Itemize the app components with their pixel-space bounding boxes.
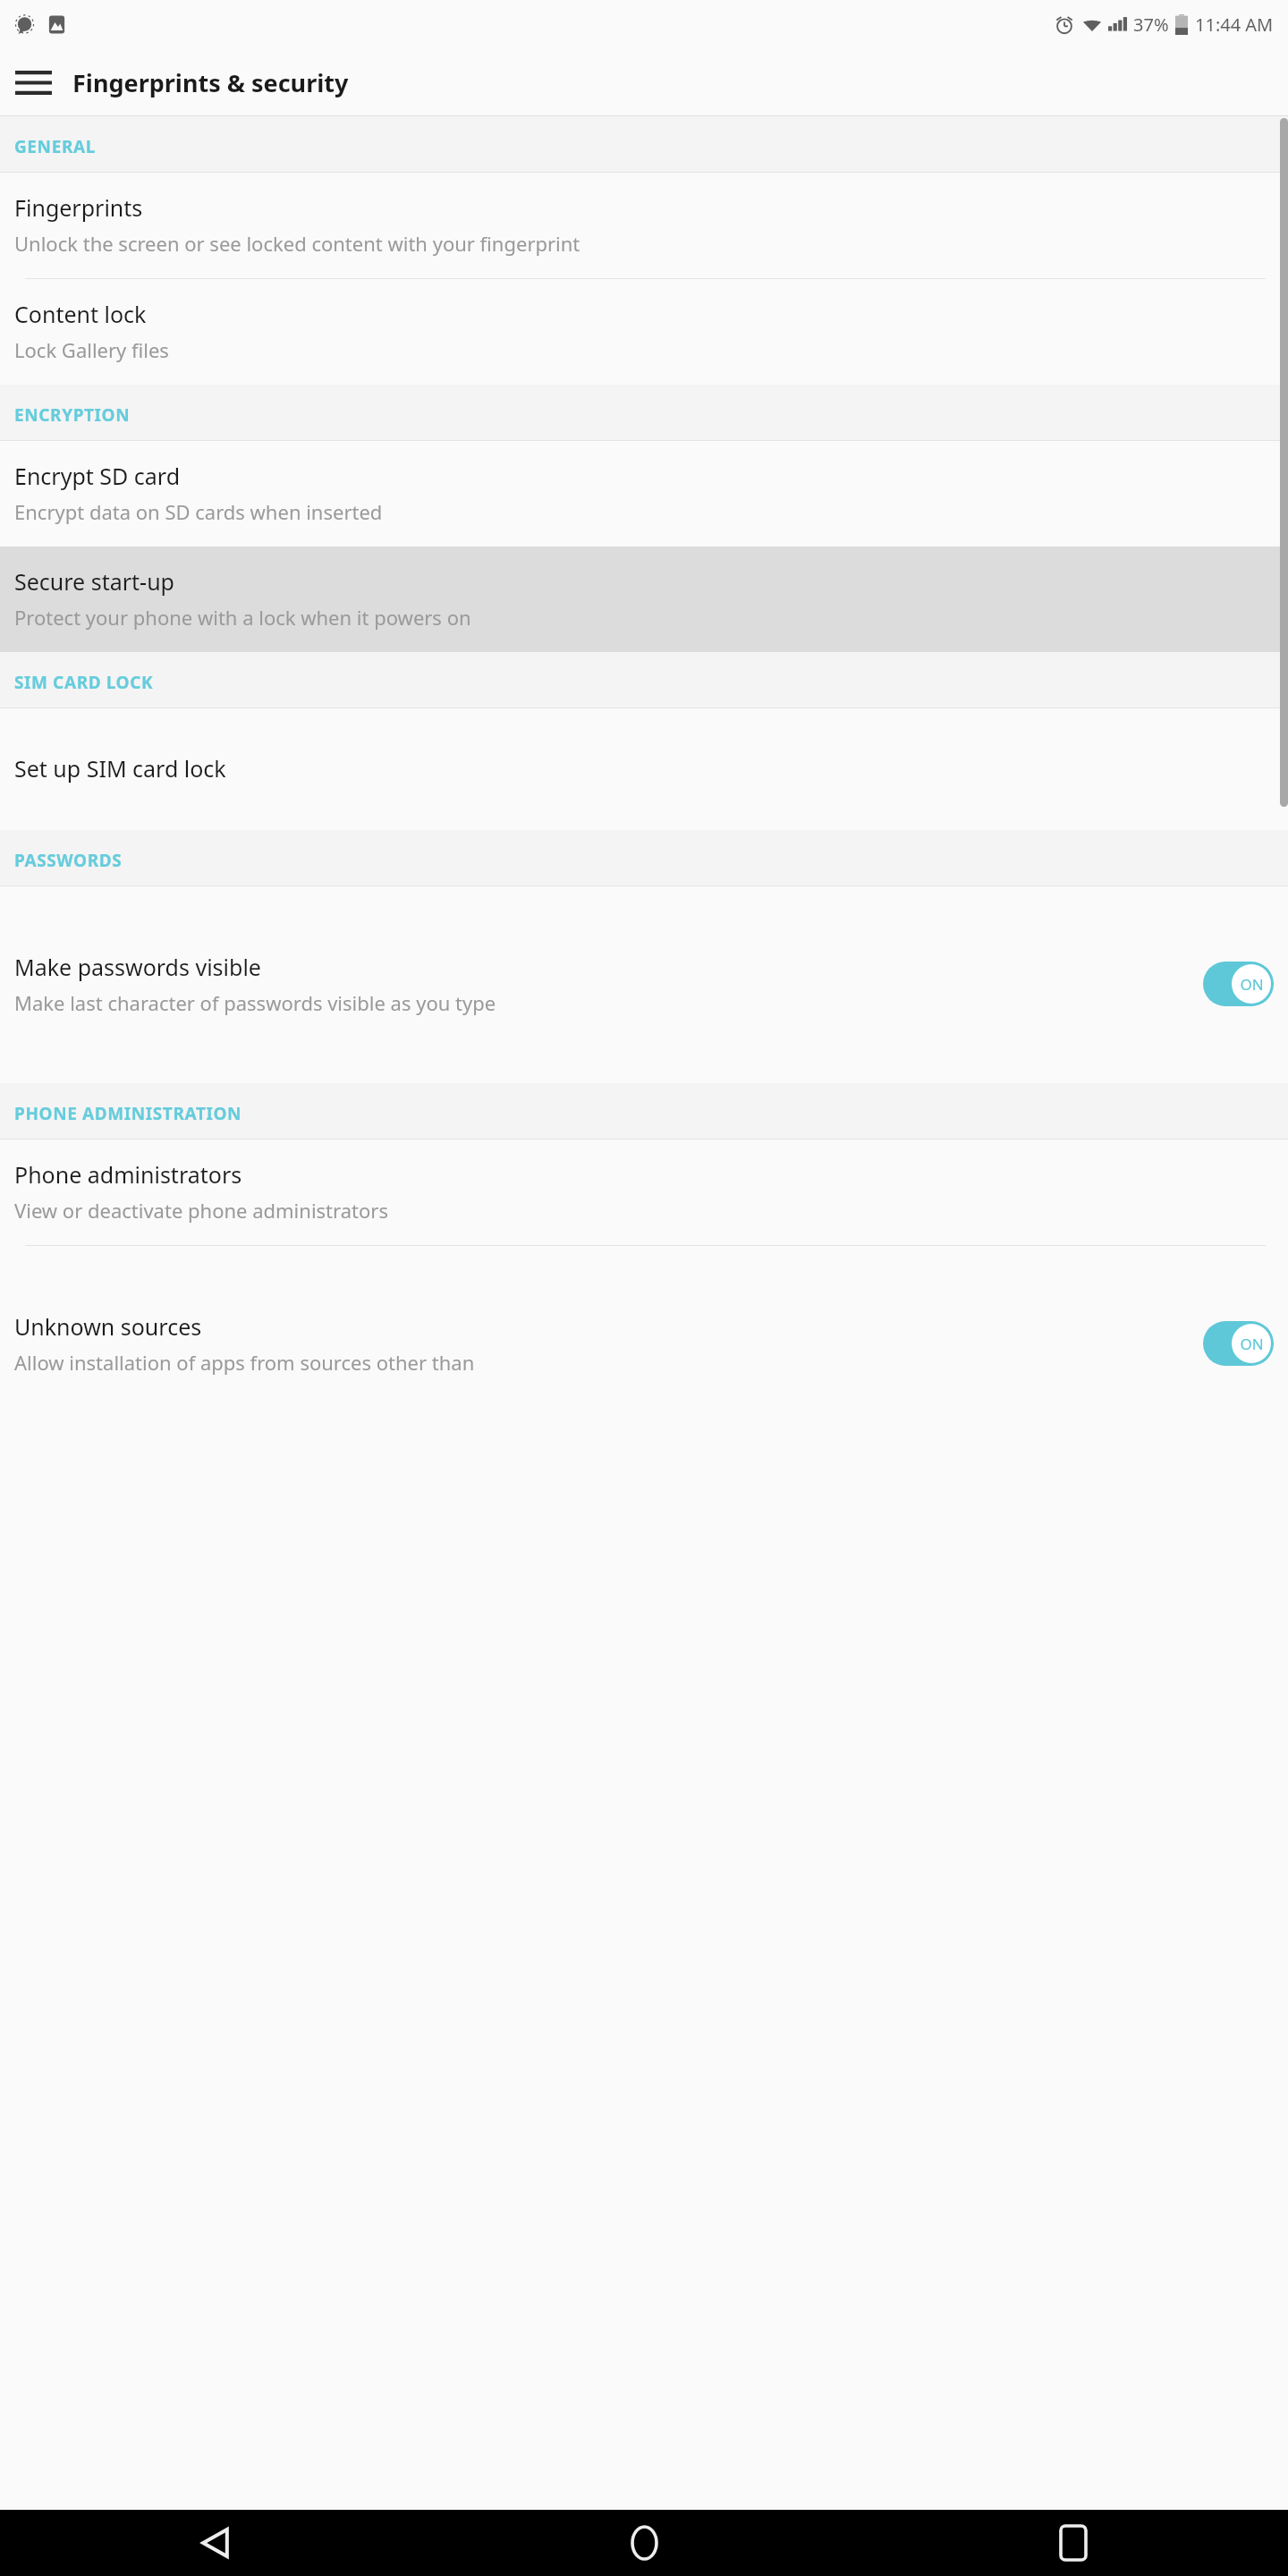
- staticText: Set up SIM card lock: [14, 753, 226, 784]
- staticText: SIM CARD LOCK: [14, 671, 154, 694]
- button[interactable]: Toggle on: [1203, 1321, 1274, 1366]
- staticText: Secure start-up: [14, 566, 174, 597]
- staticText: Fingerprints & security: [72, 66, 349, 99]
- staticText: Allow installation of apps from sources …: [14, 1349, 1110, 1376]
- button[interactable]: Secure start-up: [0, 547, 1288, 652]
- button[interactable]: Toggle on: [1203, 962, 1274, 1006]
- staticText: Encrypt SD card: [14, 461, 181, 491]
- staticText: View or deactivate phone administrators: [14, 1197, 1185, 1224]
- staticText: ON: [1240, 974, 1264, 995]
- staticText: PASSWORDS: [14, 849, 123, 872]
- staticText: GENERAL: [14, 135, 96, 158]
- button[interactable]: Fingerprints: [0, 173, 1288, 279]
- staticText: Lock Gallery files: [14, 336, 1185, 363]
- staticText: Phone administrators: [14, 1159, 242, 1190]
- staticText: Encrypt data on SD cards when inserted: [14, 498, 1185, 525]
- button[interactable]: Menu: [0, 49, 66, 115]
- staticText: Make last character of passwords visible…: [14, 989, 1110, 1016]
- staticText: ON: [1240, 1334, 1264, 1354]
- button[interactable]: Unknown sources: [0, 1246, 1288, 1443]
- button[interactable]: Phone administrators: [0, 1140, 1288, 1246]
- button[interactable]: Content lock: [0, 279, 1288, 385]
- staticText: Fingerprints: [14, 192, 143, 223]
- button[interactable]: Encrypt SD card: [0, 441, 1288, 547]
- button[interactable]: Home: [429, 2510, 859, 2576]
- staticText: Unlock the screen or see locked content …: [14, 230, 1185, 257]
- staticText: 11:44 AM: [1195, 13, 1274, 37]
- staticText: Content lock: [14, 299, 147, 329]
- staticText: Unknown sources: [14, 1311, 202, 1342]
- staticText: PHONE ADMINISTRATION: [14, 1102, 242, 1125]
- staticText: Make passwords visible: [14, 952, 261, 982]
- staticText: ENCRYPTION: [14, 403, 131, 427]
- button[interactable]: Set up SIM card lock: [0, 708, 1288, 830]
- button[interactable]: Back: [0, 2510, 429, 2576]
- staticText: 37%: [1133, 13, 1169, 37]
- button[interactable]: Make passwords visible: [0, 886, 1288, 1083]
- staticText: Protect your phone with a lock when it p…: [14, 604, 1185, 631]
- button[interactable]: Recent apps: [859, 2510, 1288, 2576]
